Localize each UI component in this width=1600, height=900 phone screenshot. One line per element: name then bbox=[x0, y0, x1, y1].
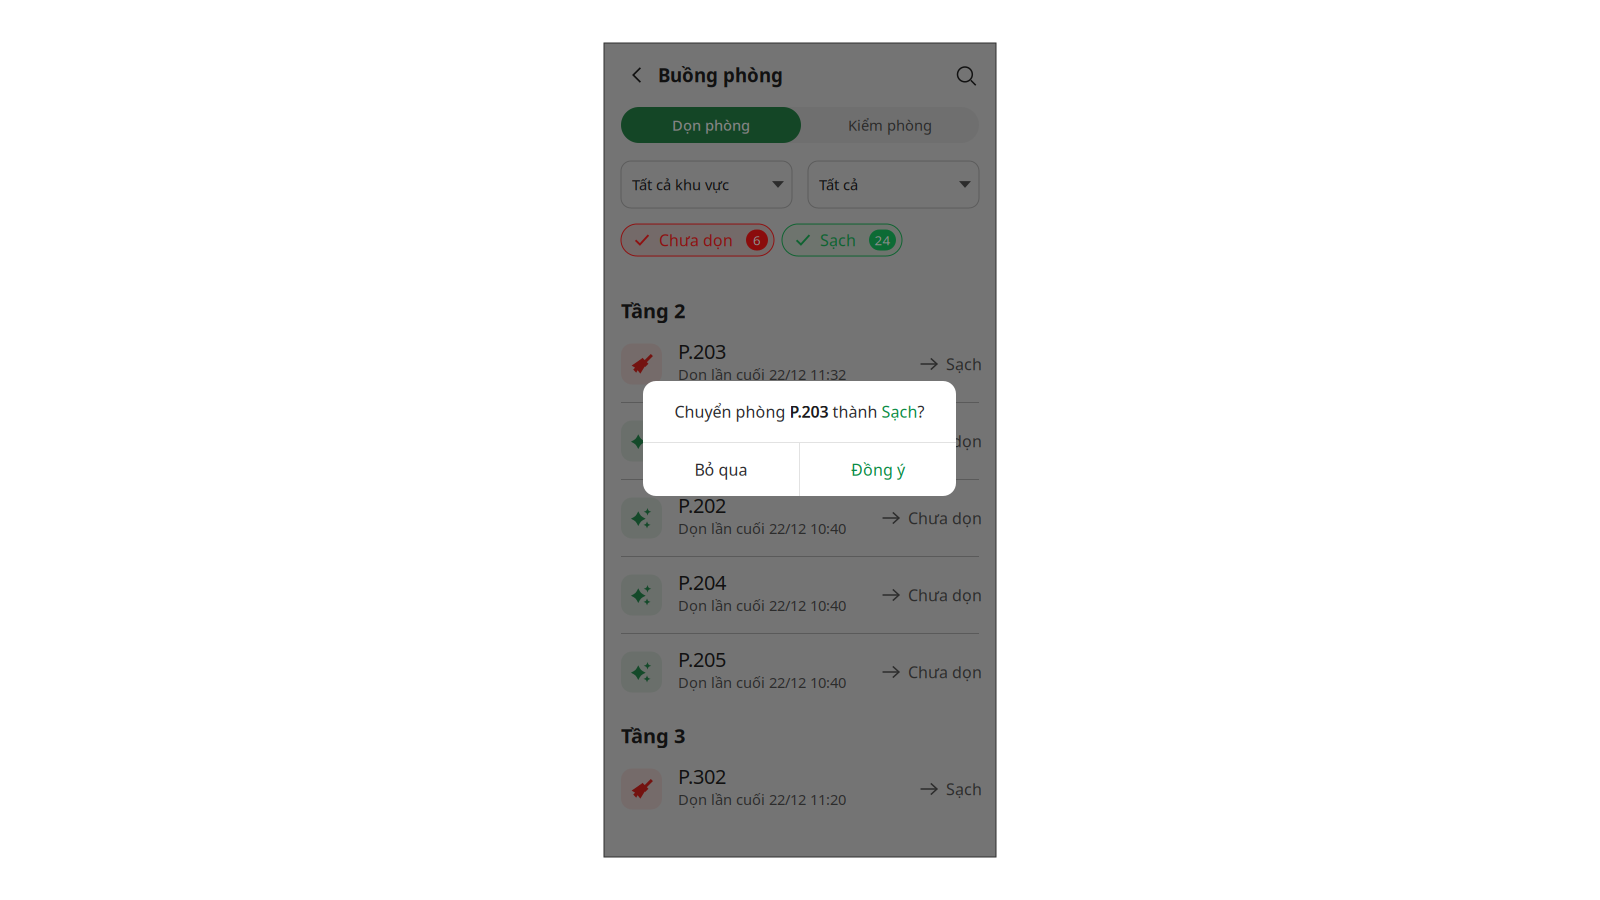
button[interactable]: Tất cả khu vực bbox=[621, 161, 792, 208]
staticText: Sạch bbox=[820, 229, 856, 251]
staticText: P.204 bbox=[678, 569, 726, 596]
staticText: Chưa dọn bbox=[908, 661, 982, 683]
staticText: Chưa dọn bbox=[908, 584, 982, 606]
button[interactable]: P.205 bbox=[604, 634, 996, 710]
staticText: Sạch bbox=[946, 778, 982, 800]
staticText: Sạch bbox=[946, 353, 982, 375]
button[interactable]: P.302 bbox=[604, 751, 996, 827]
button[interactable]: Sạch bbox=[782, 224, 902, 256]
button[interactable]: P.202 bbox=[604, 480, 996, 556]
staticText: P.203 bbox=[678, 338, 726, 365]
staticText: Tầng 2 bbox=[621, 297, 685, 324]
staticText: 6 bbox=[753, 231, 761, 249]
staticText: Dọn lần cuối 22/12 10:40 bbox=[678, 672, 846, 692]
staticText: Dọn phòng bbox=[672, 115, 750, 135]
button[interactable]: P.201 bbox=[604, 403, 996, 479]
staticText: Tất cả khu vực bbox=[632, 175, 729, 194]
staticText: thành bbox=[828, 401, 881, 422]
staticText: Dọn lần cuối 22/12 11:32 bbox=[678, 364, 846, 384]
staticText: ? bbox=[917, 401, 924, 422]
staticText: Kiểm phòng bbox=[848, 115, 932, 135]
staticText: Chưa dọn bbox=[659, 229, 733, 251]
button[interactable]: Bỏ qua bbox=[643, 443, 799, 496]
button[interactable]: Back bbox=[622, 53, 652, 97]
staticText: Đồng ý bbox=[851, 459, 905, 480]
staticText: P.203 bbox=[789, 401, 828, 422]
staticText: Chưa dọn bbox=[908, 507, 982, 529]
staticText: Buồng phòng bbox=[658, 63, 783, 87]
staticText: P.205 bbox=[678, 646, 726, 673]
button[interactable]: P.203 bbox=[604, 326, 996, 402]
staticText: Dọn lần cuối 22/12 11:20 bbox=[678, 789, 846, 809]
staticText: Dọn lần cuối 22/12 10:40 bbox=[678, 518, 846, 538]
button[interactable]: P.204 bbox=[604, 557, 996, 633]
staticText: 24 bbox=[874, 231, 890, 249]
staticText: P.302 bbox=[678, 763, 726, 790]
staticText: Chưa dọn bbox=[908, 430, 982, 452]
staticText: P.202 bbox=[678, 492, 726, 519]
staticText: Sạch bbox=[881, 401, 917, 422]
button[interactable]: Search bbox=[947, 53, 987, 97]
button[interactable]: Đồng ý bbox=[800, 443, 956, 496]
staticText: Chuyển phòng bbox=[674, 401, 789, 422]
staticText: Dọn lần cuối 22/12 10:40 bbox=[678, 441, 846, 461]
button[interactable]: Kiểm phòng bbox=[801, 107, 979, 143]
button[interactable]: Chưa dọn bbox=[621, 224, 774, 256]
staticText: Bỏ qua bbox=[694, 459, 747, 480]
staticText: Tầng 3 bbox=[621, 722, 685, 749]
button[interactable]: Dọn phòng bbox=[621, 107, 801, 143]
button[interactable]: Tất cả bbox=[808, 161, 979, 208]
staticText: Dọn lần cuối 22/12 10:40 bbox=[678, 595, 846, 615]
staticText: Tất cả bbox=[819, 175, 858, 194]
staticText: P.201 bbox=[678, 415, 726, 442]
